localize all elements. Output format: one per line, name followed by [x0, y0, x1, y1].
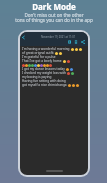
staticText: That I've got a lovely home	[22, 59, 62, 63]
staticText: Don't miss out on the other tons of thin…	[15, 12, 93, 23]
staticText: I'm grateful for a pulse	[22, 55, 56, 59]
button[interactable]: Copy	[68, 40, 72, 44]
staticText: November 19, 2021 at 11:01	[41, 35, 76, 39]
button[interactable]: Back	[21, 35, 26, 40]
button[interactable]: Share	[80, 39, 85, 44]
staticText: I got my dance lessons today	[22, 67, 65, 71]
button[interactable]: Save	[74, 40, 78, 44]
staticText: Having fun setting with doing	[22, 79, 66, 83]
staticText: Dark Mode	[32, 1, 76, 12]
staticText: of great orignal outfit	[22, 51, 54, 55]
staticText: I'm having a wonderful morning	[22, 47, 70, 51]
staticText: I checked my weight loss with	[22, 71, 66, 75]
staticText: my boxing is paying	[22, 75, 52, 79]
staticText: got myself a nice chimichanga	[22, 83, 67, 87]
